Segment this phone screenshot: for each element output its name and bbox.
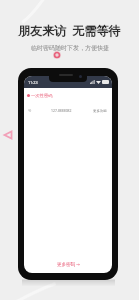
staticText: 更多功能 [93,109,107,113]
staticText: 11:23 [28,80,38,85]
staticText: 号 [28,109,32,113]
staticText: 一次性密码 [31,93,53,98]
button[interactable]: 一次性密码 [27,93,109,98]
button[interactable]: 更多密码 → [24,261,112,267]
staticText: 127-8888082 [51,108,72,113]
staticText: 更多密码 → [57,261,80,267]
staticText: 临时密码随时下发，方便快捷 [31,44,109,52]
staticText: 朋友来访 无需等待 [18,22,121,38]
